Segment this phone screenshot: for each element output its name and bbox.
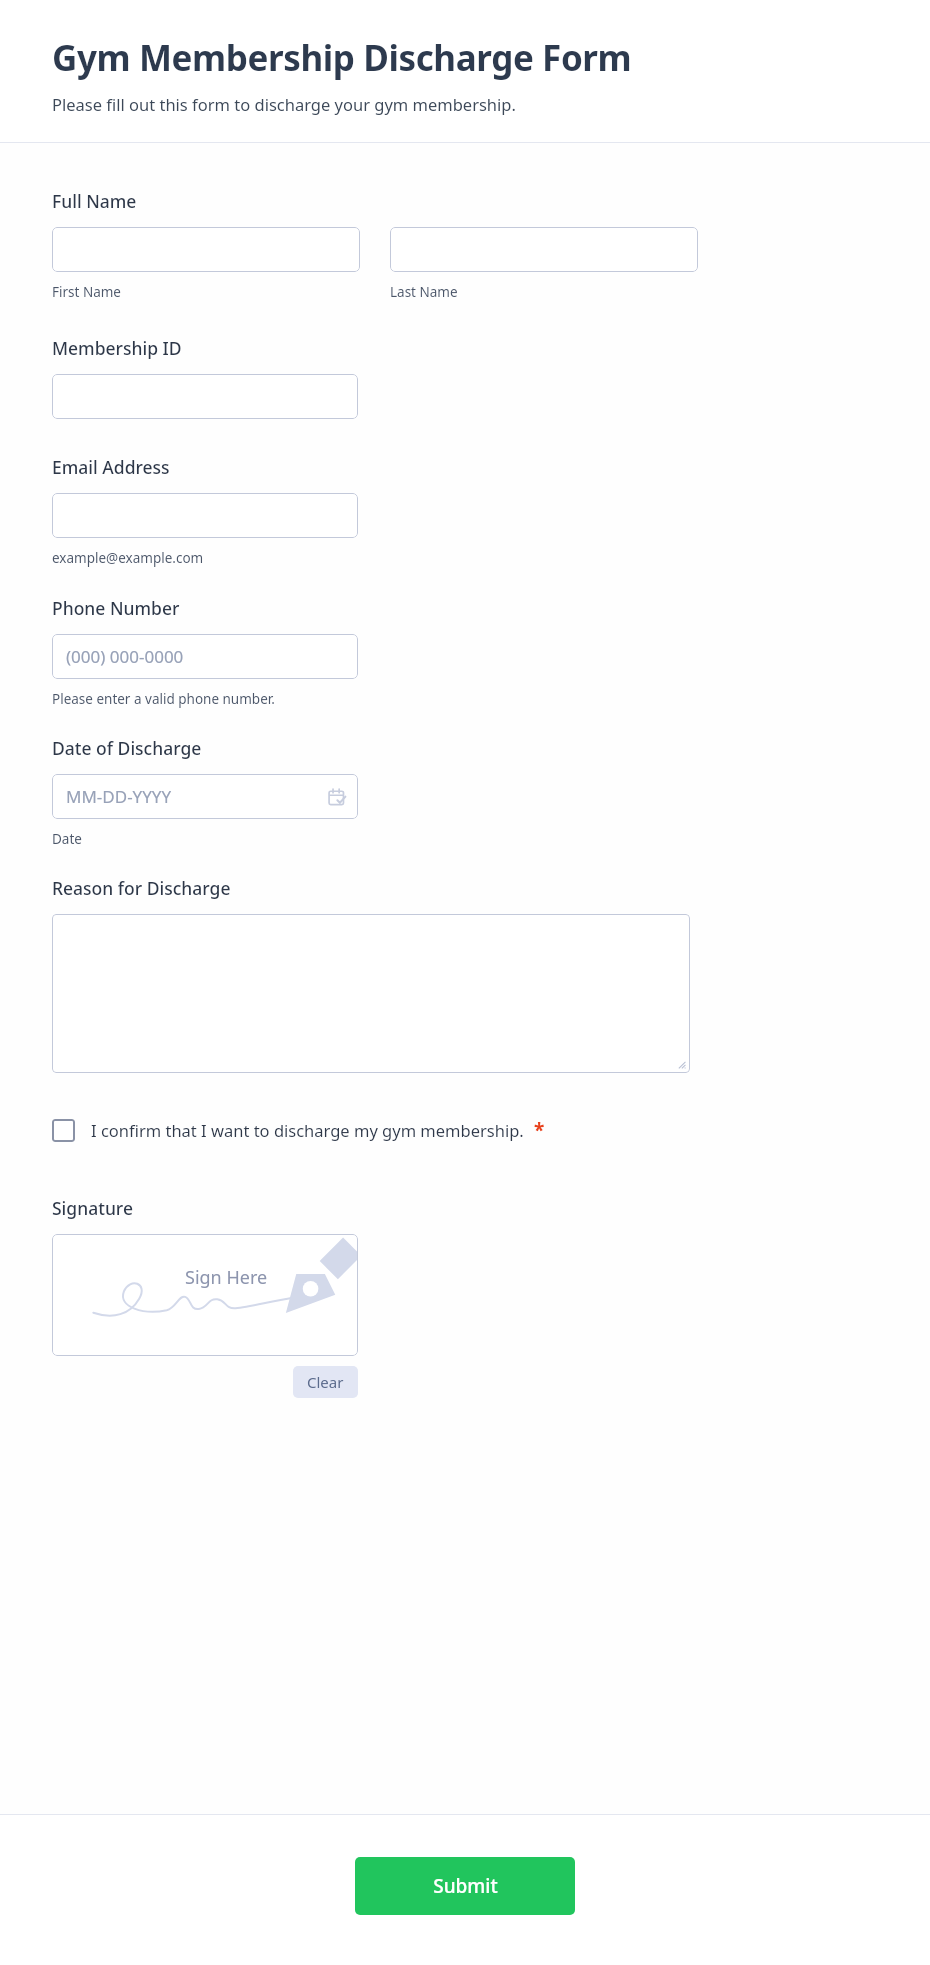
staticText: Gym Membership Discharge Form (52, 34, 632, 82)
button[interactable]: Sign here (52, 1234, 358, 1356)
staticText: Please enter a valid phone number. (52, 690, 275, 708)
staticText: example@example.com (52, 549, 204, 567)
button[interactable]: I confirm that I want to discharge my gy… (52, 1117, 545, 1143)
staticText: I confirm that I want to discharge my gy… (91, 1119, 524, 1141)
staticText: (000) 000-0000 (66, 645, 184, 668)
staticText: Sign Here (185, 1265, 268, 1290)
staticText: Email Address (52, 455, 170, 479)
button[interactable] (390, 227, 698, 272)
staticText: Phone Number (52, 596, 180, 620)
button[interactable]: Submit (355, 1857, 575, 1915)
staticText: MM-DD-YYYY (66, 785, 172, 808)
staticText: Clear (307, 1372, 344, 1392)
staticText: Submit (433, 1873, 498, 1899)
other: Pick date (328, 788, 346, 806)
staticText: Membership ID (52, 336, 182, 360)
button[interactable]: (000) 000-0000 (52, 634, 358, 679)
button[interactable] (52, 493, 358, 538)
button[interactable]: Clear (293, 1366, 358, 1398)
button[interactable] (52, 227, 360, 272)
staticText: First Name (52, 283, 121, 301)
staticText: Date (52, 830, 82, 848)
staticText: * (534, 1117, 545, 1143)
staticText: Last Name (390, 283, 458, 301)
staticText: Please fill out this form to discharge y… (52, 93, 516, 115)
staticText: Date of Discharge (52, 736, 202, 760)
staticText: Reason for Discharge (52, 876, 231, 900)
button[interactable] (52, 374, 358, 419)
staticText: Signature (52, 1196, 133, 1220)
staticText: Full Name (52, 189, 137, 213)
button[interactable] (52, 914, 690, 1073)
button[interactable]: MM-DD-YYYY (52, 774, 358, 819)
